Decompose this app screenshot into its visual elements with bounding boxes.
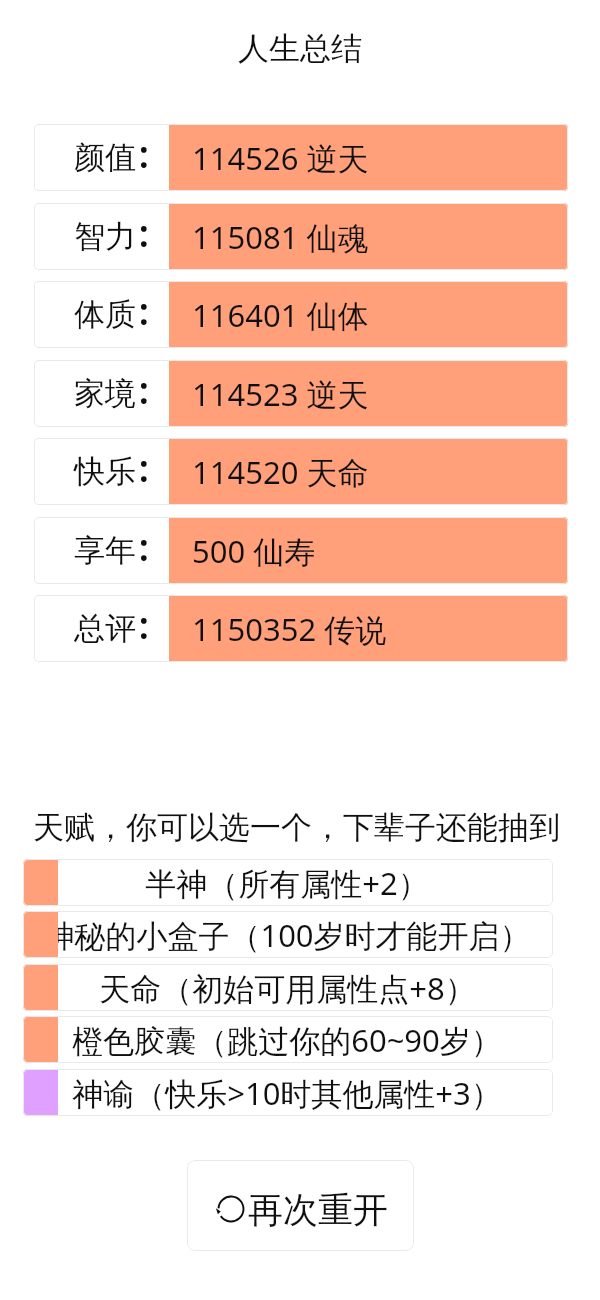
staticText: 再次重开: [248, 1188, 388, 1232]
staticText: 颜值: [74, 138, 136, 177]
staticText: 1150352 传说: [192, 608, 387, 650]
staticText: 总评: [74, 609, 136, 648]
button[interactable]: 快乐: [34, 438, 568, 505]
button[interactable]: 享年: [34, 517, 568, 584]
button[interactable]: Restart: [187, 1160, 414, 1251]
staticText: 神秘的小盒子（100岁时才能开启）: [43, 914, 531, 956]
button[interactable]: 橙色胶囊（跳过你的60~90岁）: [23, 1016, 553, 1063]
staticText: 智力: [74, 217, 136, 256]
staticText: 享年: [74, 531, 136, 570]
staticText: 神谕（快乐>10时其他属性+3）: [72, 1072, 502, 1114]
staticText: 天命（初始可用属性点+8）: [99, 967, 476, 1009]
button[interactable]: 颜值: [34, 124, 568, 191]
button[interactable]: 半神（所有属性+2）: [23, 859, 553, 906]
button[interactable]: 智力: [34, 203, 568, 270]
button[interactable]: 总评: [34, 595, 568, 662]
button[interactable]: 体质: [34, 281, 568, 348]
button[interactable]: 神秘的小盒子（100岁时才能开启）: [23, 911, 553, 958]
staticText: 体质: [74, 295, 136, 334]
button[interactable]: 家境: [34, 360, 568, 427]
other: Restart: [215, 1193, 247, 1225]
staticText: 半神（所有属性+2）: [145, 862, 429, 904]
staticText: 114526 逆天: [192, 137, 369, 179]
staticText: 116401 仙体: [192, 294, 369, 336]
staticText: 天赋，你可以选一个，下辈子还能抽到: [33, 808, 560, 847]
staticText: 快乐: [74, 452, 136, 491]
staticText: 115081 仙魂: [192, 216, 369, 258]
staticText: 人生总结: [238, 29, 362, 68]
button[interactable]: 神谕（快乐>10时其他属性+3）: [23, 1069, 553, 1116]
staticText: 114520 天命: [192, 451, 369, 493]
staticText: 家境: [74, 374, 136, 413]
staticText: 114523 逆天: [192, 373, 369, 415]
staticText: 橙色胶囊（跳过你的60~90岁）: [72, 1019, 502, 1061]
button[interactable]: 天命（初始可用属性点+8）: [23, 964, 553, 1011]
staticText: 500 仙寿: [192, 530, 316, 572]
